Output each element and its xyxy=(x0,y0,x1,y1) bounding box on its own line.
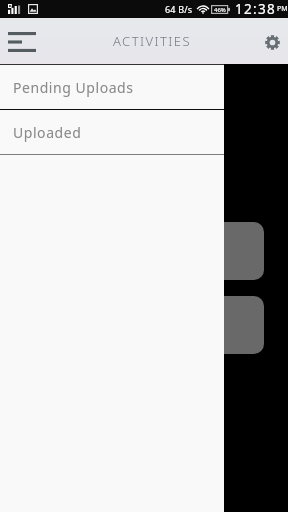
staticText: 64 B/s xyxy=(165,3,193,15)
button[interactable]: Open navigation drawer xyxy=(0,18,44,64)
staticText: 46% xyxy=(214,6,226,14)
staticText: PM xyxy=(277,4,288,14)
button[interactable]: Settings xyxy=(256,18,288,64)
staticText: ACTIVITIES xyxy=(113,32,191,50)
staticText: Uploaded xyxy=(13,123,82,142)
button[interactable]: Pending Uploads xyxy=(0,65,224,110)
button[interactable] xyxy=(12,296,264,354)
staticText: Pending Uploads xyxy=(13,78,134,97)
button[interactable]: Uploaded xyxy=(0,110,224,155)
staticText: 12:38 xyxy=(235,0,277,18)
button[interactable] xyxy=(12,222,264,280)
